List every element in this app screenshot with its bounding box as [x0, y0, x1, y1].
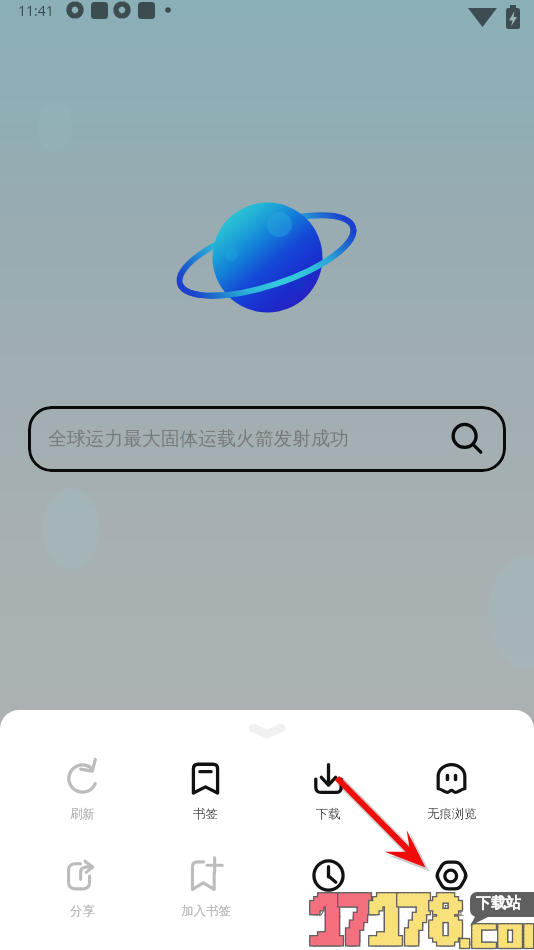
other: Incognito [436, 763, 467, 794]
other: Settings [436, 860, 467, 891]
staticText: 设置 [439, 903, 464, 919]
other: Share [67, 860, 98, 891]
other: Add bookmark [190, 860, 221, 891]
staticText: 历史 [316, 903, 341, 919]
button[interactable]: Settings [390, 856, 513, 923]
staticText: 全球运力最大固体运载火箭发射成功 [48, 427, 349, 451]
staticText: 分享 [70, 903, 95, 919]
button[interactable]: Refresh [21, 759, 144, 826]
staticText: 无痕浏览 [427, 806, 477, 822]
button[interactable]: Add bookmark [144, 856, 267, 923]
staticText: 下载 [316, 806, 341, 822]
button[interactable]: Downloads [267, 759, 390, 826]
staticText: 加入书签 [181, 903, 231, 919]
other: Downloads [313, 763, 344, 794]
other: Refresh [67, 763, 98, 794]
button[interactable]: History [267, 856, 390, 923]
staticText: 11:41 [18, 1, 54, 20]
button[interactable]: Share [21, 856, 144, 923]
other: Bookmarks [190, 763, 221, 794]
button[interactable]: Incognito [390, 759, 513, 826]
staticText: 刷新 [70, 806, 95, 822]
other: History [313, 860, 344, 891]
staticText: 书签 [193, 806, 218, 822]
button[interactable]: 全球运力最大固体运载火箭发射成功 [28, 406, 506, 472]
staticText: 下载站 [476, 894, 521, 913]
button[interactable]: Bookmarks [144, 759, 267, 826]
